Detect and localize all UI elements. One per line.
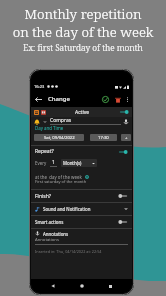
staticText: First saturday of the month: [35, 179, 87, 184]
staticText: Annotations: [43, 231, 69, 237]
button[interactable]: Delete: [112, 94, 123, 105]
staticText: Inserted in: Thu, 04/14/2022 at: 22:54: [35, 249, 102, 254]
button[interactable]: +: [121, 134, 131, 141]
staticText: Day and Time: [35, 125, 64, 131]
staticText: Compras: [50, 117, 72, 124]
staticText: Smart actions: [35, 219, 64, 225]
staticText: 17:30: [98, 135, 109, 141]
staticText: Repeat?: [35, 148, 54, 155]
button[interactable]: Recents: [103, 279, 117, 293]
button[interactable]: Back: [46, 279, 60, 293]
button[interactable]: Month(s): [61, 159, 97, 167]
staticText: Month(s): [63, 160, 82, 166]
button[interactable]: More options: [123, 95, 132, 104]
staticText: on the day of the week: [0, 23, 166, 41]
staticText: Finish?: [35, 193, 51, 200]
button[interactable]: Save: [99, 93, 112, 106]
staticText: Annotations: [35, 237, 59, 243]
staticText: Every: [35, 160, 47, 166]
staticText: Active: [75, 109, 90, 116]
staticText: Sat, 09/04/2022: [44, 135, 75, 141]
button[interactable]: Repeat?: [35, 147, 128, 156]
staticText: Change: [48, 95, 70, 103]
button[interactable]: Toggle on: [118, 149, 128, 155]
button[interactable]: Toggle off: [118, 193, 128, 199]
staticText: at the day of the week: [35, 174, 82, 180]
staticText: Sound and Notification: [43, 206, 91, 212]
button[interactable]: Smart actions: [35, 216, 128, 228]
staticText: +: [125, 135, 128, 141]
button[interactable]: 17:30: [90, 134, 117, 141]
button[interactable]: Toggle on: [119, 109, 129, 115]
button[interactable]: Toggle off: [118, 219, 128, 225]
button[interactable]: Finish?: [35, 190, 128, 202]
button[interactable]: Sat, 09/04/2022: [34, 134, 84, 141]
staticText: Ex: first Saturday of the month: [0, 42, 166, 54]
staticText: 1: [52, 159, 55, 166]
button[interactable]: Home: [75, 279, 89, 293]
button[interactable]: Back: [31, 92, 45, 106]
staticText: Monthly repetition: [0, 5, 166, 23]
button[interactable]: at the day of the week: [35, 173, 128, 180]
button[interactable]: Active: [34, 107, 129, 117]
staticText: 16:23: [34, 84, 45, 89]
button[interactable]: Sound and Notification: [35, 203, 128, 215]
